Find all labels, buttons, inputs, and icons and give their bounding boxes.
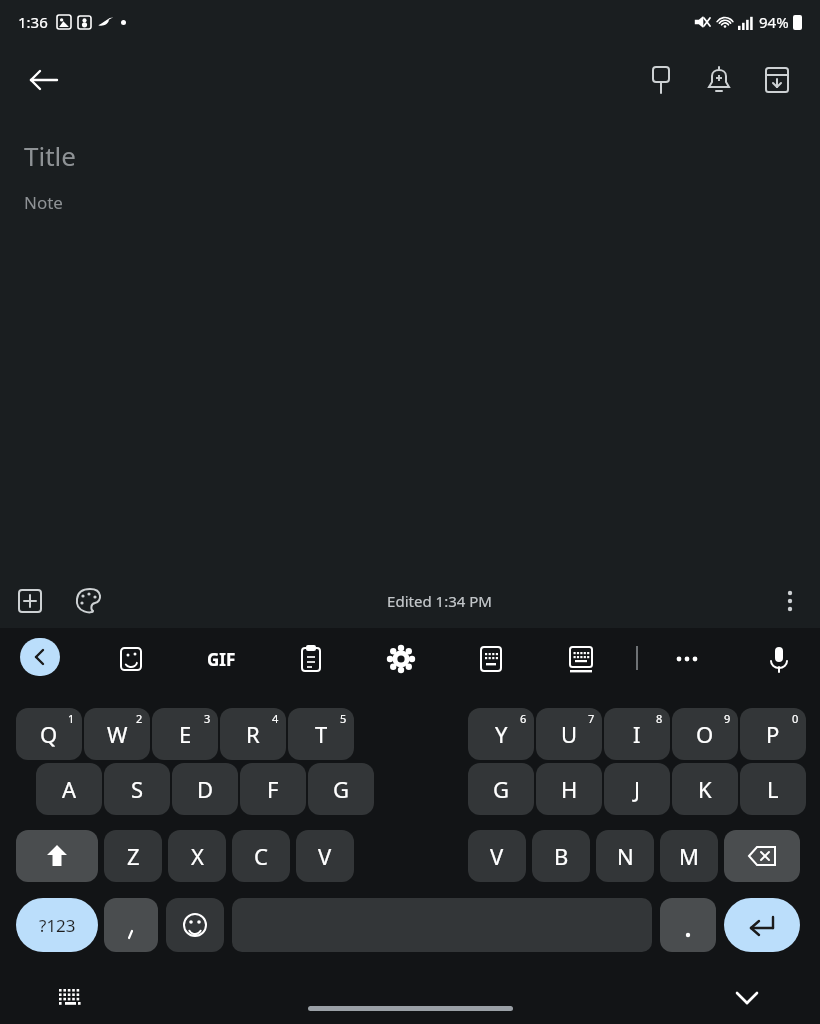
button[interactable]: T <box>288 708 354 760</box>
button[interactable]: H <box>536 763 602 815</box>
button[interactable]: Back <box>20 638 60 676</box>
staticText: 1 <box>68 711 75 726</box>
staticText: Q <box>40 719 58 749</box>
button[interactable]: U <box>536 708 602 760</box>
button[interactable]: More options <box>770 581 810 621</box>
button[interactable]: Hide keyboard <box>726 976 768 1018</box>
staticText: 0 <box>792 711 799 726</box>
button[interactable]: A <box>36 763 102 815</box>
staticText: U <box>561 719 578 749</box>
staticText: K <box>698 774 712 804</box>
button[interactable]: Switch keyboard <box>48 976 90 1018</box>
staticText: C <box>254 841 268 871</box>
staticText: I <box>633 719 641 749</box>
staticText: 9 <box>724 711 731 726</box>
staticText: GIF <box>207 648 236 671</box>
staticText: F <box>267 774 279 804</box>
staticText: H <box>561 774 578 804</box>
staticText: R <box>246 719 260 749</box>
staticText: Title <box>24 138 76 173</box>
button[interactable]: G <box>468 763 534 815</box>
staticText: Note <box>24 191 63 214</box>
button[interactable]: Change colour <box>69 581 109 621</box>
staticText: 1:36 <box>18 12 48 32</box>
button[interactable]: Floating keyboard <box>560 638 602 680</box>
button[interactable]: W <box>84 708 150 760</box>
staticText: P <box>766 719 780 749</box>
button[interactable]: V <box>296 830 354 882</box>
staticText: 4 <box>272 711 279 726</box>
staticText: A <box>62 774 77 804</box>
button[interactable]: Clipboard <box>290 638 332 680</box>
button[interactable]: X <box>168 830 226 882</box>
button[interactable]: One-handed keyboard <box>470 638 512 680</box>
button[interactable]: Emoji <box>166 898 224 952</box>
staticText: 94% <box>759 12 789 32</box>
staticText: Edited 1:34 PM <box>387 591 492 611</box>
staticText: M <box>679 841 699 871</box>
button[interactable]: V <box>468 830 526 882</box>
button[interactable]: Q <box>16 708 82 760</box>
button[interactable]: Archive <box>754 57 800 103</box>
button[interactable]: R <box>220 708 286 760</box>
staticText: V <box>490 841 504 871</box>
button[interactable]: Shift <box>16 830 98 882</box>
staticText: B <box>554 841 569 871</box>
staticText: W <box>107 719 128 749</box>
button[interactable]: E <box>152 708 218 760</box>
button[interactable]: C <box>232 830 290 882</box>
button[interactable]: Back <box>20 56 68 104</box>
staticText: 7 <box>588 711 595 726</box>
button[interactable]: More <box>666 638 708 680</box>
staticText: ?123 <box>39 914 76 937</box>
staticText: O <box>696 719 714 749</box>
staticText: D <box>197 774 214 804</box>
staticText: S <box>131 774 144 804</box>
button[interactable]: Period <box>660 898 716 952</box>
button[interactable]: Voice input <box>758 638 800 680</box>
staticText: L <box>767 774 779 804</box>
button[interactable]: Backspace <box>724 830 800 882</box>
button[interactable]: Add reminder <box>696 57 742 103</box>
button[interactable]: G <box>308 763 374 815</box>
button[interactable]: K <box>672 763 738 815</box>
button[interactable]: N <box>596 830 654 882</box>
button[interactable]: ?123 <box>16 898 98 952</box>
button[interactable]: J <box>604 763 670 815</box>
button[interactable]: Y <box>468 708 534 760</box>
staticText: G <box>333 774 350 804</box>
staticText: 6 <box>520 711 527 726</box>
button[interactable]: O <box>672 708 738 760</box>
button[interactable]: Z <box>104 830 162 882</box>
staticText: Z <box>127 841 140 871</box>
staticText: V <box>318 841 332 871</box>
button[interactable]: Pin note <box>638 57 684 103</box>
staticText: Y <box>495 719 508 749</box>
staticText: 3 <box>204 711 211 726</box>
staticText: X <box>191 841 204 871</box>
button[interactable]: Enter <box>724 898 800 952</box>
staticText: 8 <box>656 711 663 726</box>
staticText: E <box>179 719 192 749</box>
button[interactable]: Add attachment <box>10 581 50 621</box>
staticText: G <box>493 774 510 804</box>
button[interactable]: I <box>604 708 670 760</box>
button[interactable]: Comma <box>104 898 158 952</box>
button[interactable]: L <box>740 763 806 815</box>
staticText: N <box>617 841 634 871</box>
staticText: 5 <box>340 711 347 726</box>
button[interactable]: F <box>240 763 306 815</box>
button[interactable]: M <box>660 830 718 882</box>
button[interactable]: Stickers <box>110 638 152 680</box>
button[interactable]: S <box>104 763 170 815</box>
button[interactable]: D <box>172 763 238 815</box>
button[interactable]: GIF <box>198 638 244 680</box>
staticText: T <box>315 719 328 749</box>
staticText: 2 <box>136 711 143 726</box>
button[interactable]: Settings <box>380 638 422 680</box>
staticText: J <box>634 774 641 804</box>
button[interactable]: P <box>740 708 806 760</box>
button[interactable]: B <box>532 830 590 882</box>
